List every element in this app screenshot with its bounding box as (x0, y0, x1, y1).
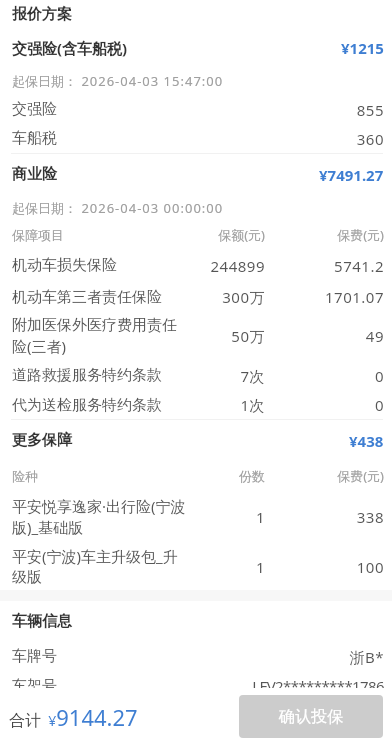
staticText: 机动车损失保险 (12, 256, 190, 275)
staticText: 保费(元) (265, 226, 384, 244)
staticText: 0 (265, 395, 384, 415)
staticText: 244899 (190, 256, 265, 276)
staticText: 50万 (190, 326, 265, 346)
staticText: 车架号 (12, 677, 252, 688)
staticText: 平安(宁波)车主升级包_升级版 (12, 546, 190, 587)
staticText: 附加医保外医疗费用责任险(三者) (12, 316, 190, 357)
staticText: 5741.2 (265, 256, 384, 276)
staticText: 保额(元) (190, 226, 265, 244)
staticText: 1 (190, 507, 265, 527)
staticText: 起保日期： (12, 73, 77, 89)
staticText: ¥1215 (341, 38, 384, 58)
staticText: 险种 (12, 468, 190, 484)
button[interactable]: 确认投保 (239, 695, 383, 738)
staticText: 855 (356, 100, 384, 120)
staticText: 浙B* (349, 647, 384, 667)
staticText: 起保日期： (12, 200, 77, 216)
staticText: 合计 ¥9144.27 (9, 702, 138, 732)
staticText: 份数 (190, 468, 265, 484)
staticText: 338 (265, 507, 384, 527)
staticText: 1 (190, 557, 265, 577)
staticText: ¥438 (349, 431, 384, 451)
staticText: 100 (265, 557, 384, 577)
staticText: 更多保障 (12, 431, 349, 450)
staticText: LFV2*********1786 (252, 676, 384, 688)
staticText: 机动车第三者责任保险 (12, 288, 190, 307)
staticText: 300万 (190, 287, 265, 307)
staticText: 平安悦享逸家·出行险(宁波版)_基础版 (12, 496, 190, 538)
staticText: 2026-04-03 15:47:00 (77, 72, 224, 90)
staticText: 车辆信息 (12, 612, 384, 631)
staticText: 车牌号 (12, 647, 349, 666)
staticText: 7次 (190, 366, 265, 386)
staticText: 报价方案 (12, 5, 384, 24)
staticText: 1701.07 (265, 287, 384, 307)
staticText: 交强险 (12, 100, 356, 119)
staticText: 0 (265, 366, 384, 386)
staticText: 360 (356, 129, 384, 149)
staticText: 道路救援服务特约条款 (12, 366, 190, 385)
staticText: ¥7491.27 (319, 165, 384, 185)
staticText: 交强险(含车船税) (12, 38, 341, 58)
staticText: 保费(元) (265, 467, 384, 485)
staticText: 车船税 (12, 129, 356, 148)
staticText: 代为送检服务特约条款 (12, 396, 190, 415)
staticText: 2026-04-03 00:00:00 (77, 199, 224, 217)
staticText: 保障项目 (12, 227, 190, 243)
staticText: 商业险 (12, 165, 319, 184)
staticText: 1次 (190, 395, 265, 415)
staticText: 确认投保 (279, 707, 343, 727)
staticText: 49 (265, 326, 384, 346)
